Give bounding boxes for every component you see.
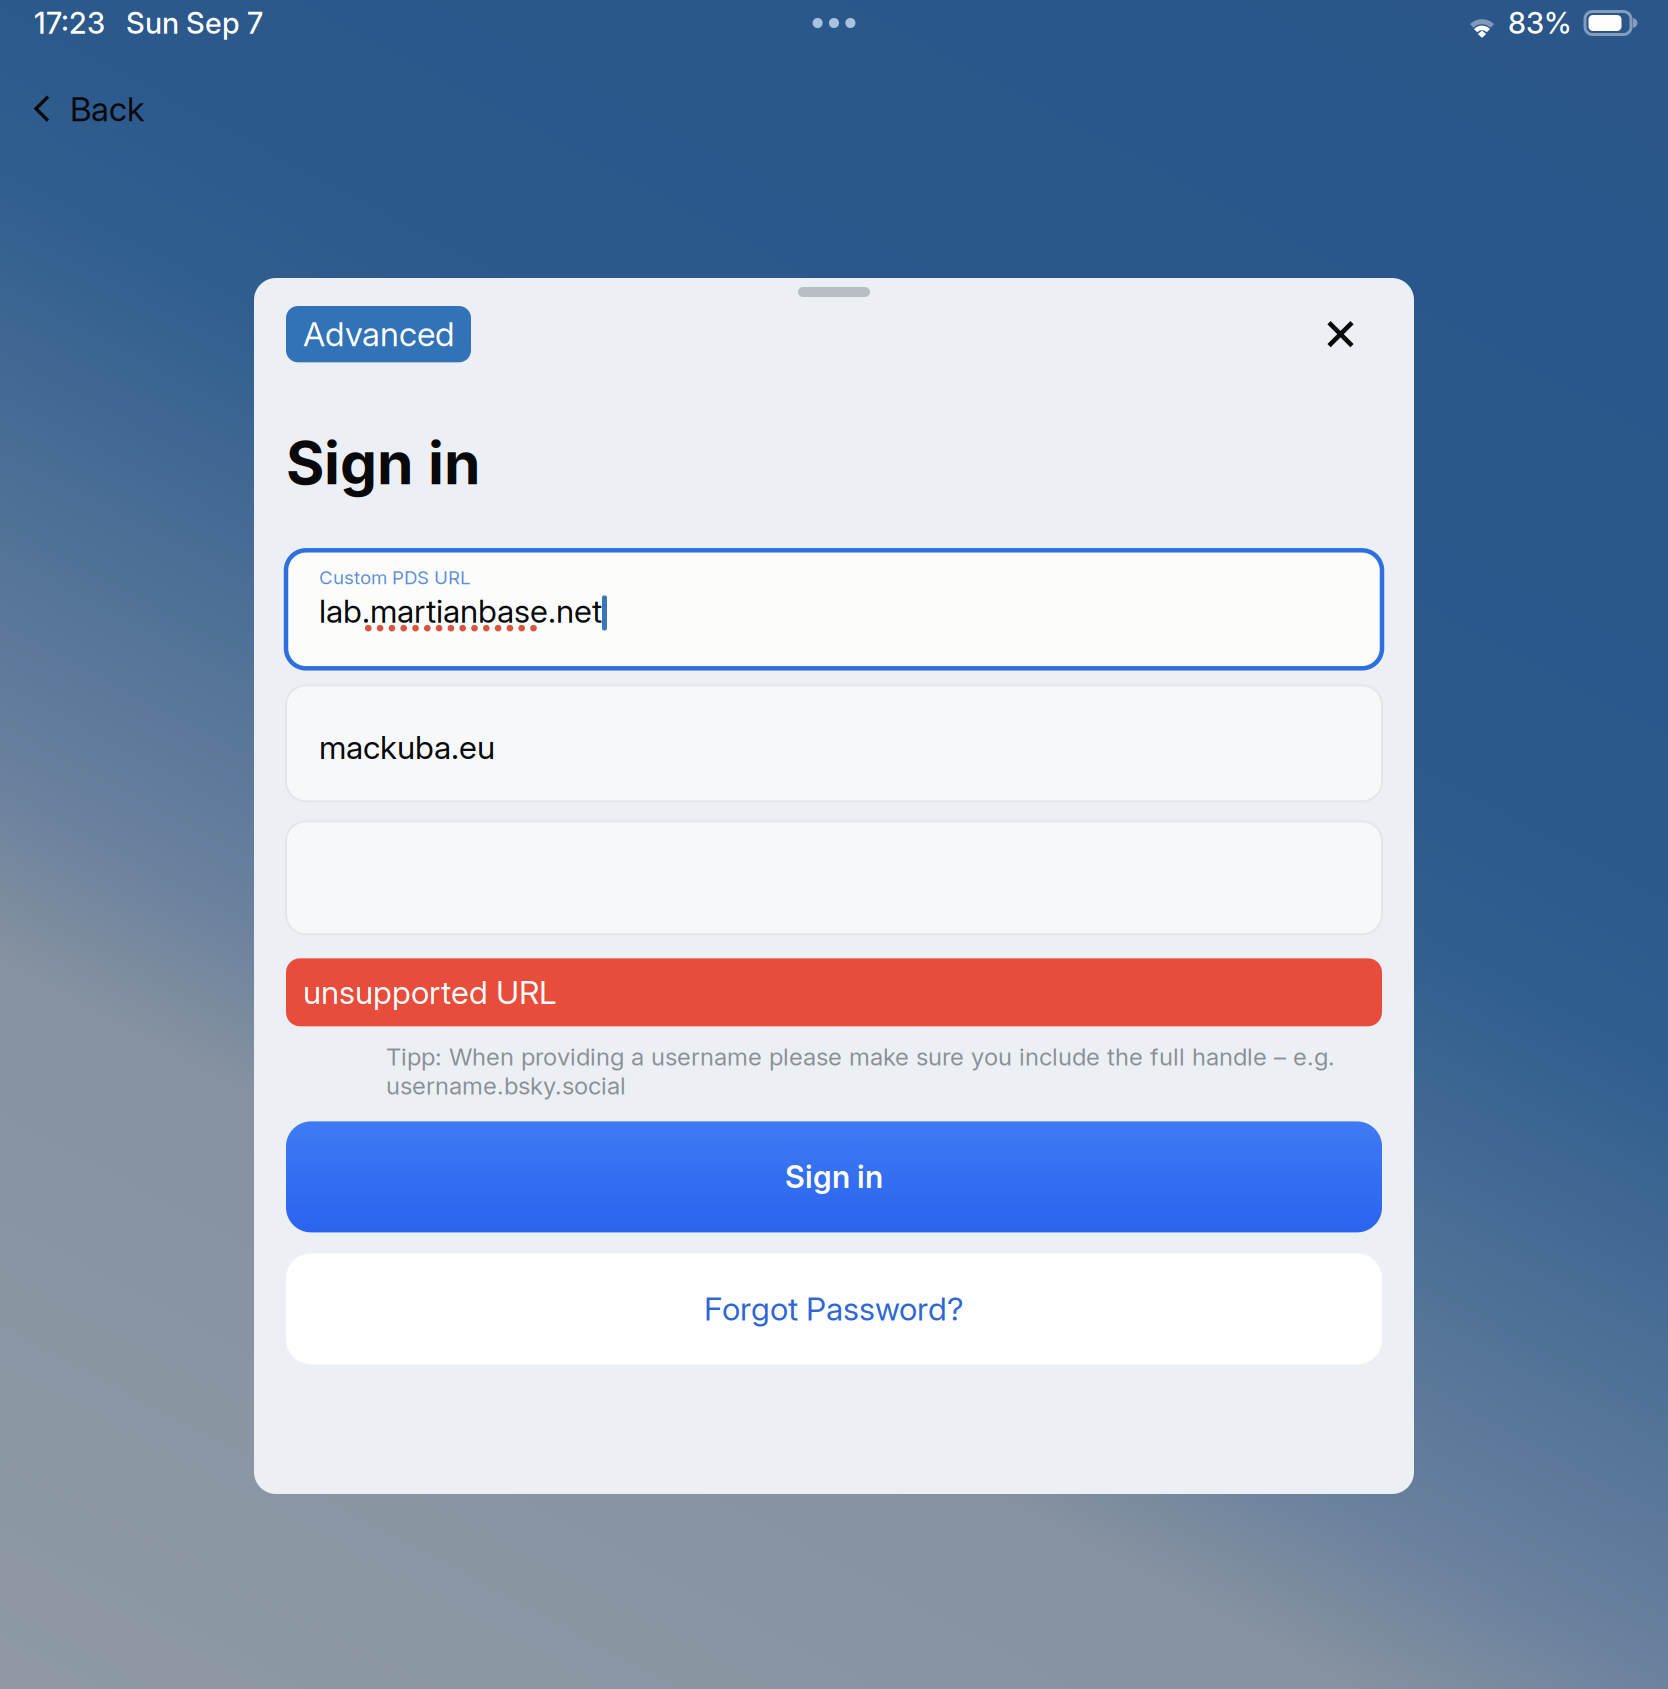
staticText: 83%: [1508, 5, 1572, 41]
staticText: 17:23: [34, 5, 105, 41]
staticText: Advanced: [303, 314, 454, 354]
staticText: Sun Sep 7: [105, 5, 263, 41]
staticText: Back: [70, 89, 144, 129]
staticText: unsupported URL: [303, 973, 557, 1012]
button[interactable]: Close: [1289, 311, 1382, 358]
staticText: mackuba.eu: [319, 728, 495, 767]
staticText: Sign in: [785, 1158, 883, 1195]
staticText: lab.martianbase.net: [319, 592, 602, 630]
button[interactable]: Custom PDS URL: [286, 550, 1382, 668]
button[interactable]: Back: [15, 46, 164, 143]
button[interactable]: Forgot Password?: [286, 1253, 1382, 1364]
button[interactable]: Sign in: [286, 1121, 1382, 1232]
staticText: Custom PDS URL: [319, 566, 471, 589]
button[interactable]: mackuba.eu: [286, 685, 1382, 801]
staticText: Sign in: [286, 427, 481, 498]
staticText: Tipp: When providing a username please m…: [386, 1042, 1335, 1100]
staticText: Forgot Password?: [704, 1289, 964, 1328]
button[interactable]: Advanced: [286, 306, 471, 362]
